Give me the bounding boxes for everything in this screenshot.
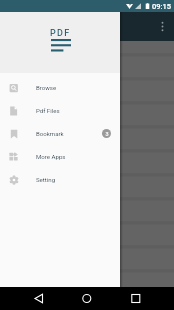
staticText: Pdf Files: [36, 107, 60, 114]
staticText: PDF: [50, 28, 71, 39]
staticText: More Apps: [36, 153, 66, 160]
staticText: 09:15: [152, 2, 172, 11]
button[interactable]: More options: [156, 20, 169, 33]
staticText: 3: [105, 131, 109, 137]
button[interactable]: More Apps: [0, 145, 120, 168]
button[interactable]: Setting: [0, 168, 120, 191]
staticText: Browse: [36, 84, 57, 91]
button[interactable]: Browse: [0, 76, 120, 99]
staticText: Setting: [36, 176, 56, 183]
button[interactable]: Bookmark: [0, 122, 120, 145]
staticText: Bookmark: [36, 130, 64, 137]
button[interactable]: Pdf Files: [0, 99, 120, 122]
